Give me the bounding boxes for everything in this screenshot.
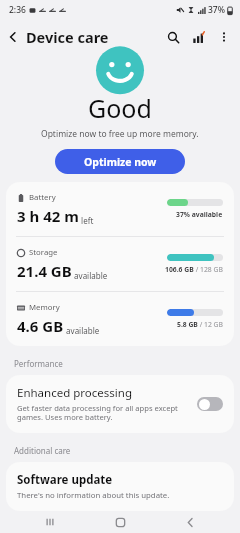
button[interactable]: Usage statistics (186, 24, 212, 50)
staticText: 106.6 GB (165, 265, 194, 274)
staticText: / 128 GB (194, 265, 223, 274)
button[interactable]: Enhanced processing toggle (197, 397, 223, 411)
staticText: Enhanced processing (17, 385, 132, 401)
staticText: Software update (17, 472, 113, 488)
button[interactable]: Enhanced processing (6, 375, 234, 433)
button[interactable]: Back (0, 24, 26, 50)
staticText: 4.6 GB (17, 316, 64, 336)
staticText: Device care (26, 27, 109, 47)
staticText: Optimize now to free up more memory. (41, 128, 199, 140)
button[interactable]: Memory (6, 292, 234, 346)
staticText: Memory (29, 302, 60, 313)
staticText: 37% (208, 4, 225, 16)
staticText: 2:36 (9, 4, 26, 16)
button[interactable]: Storage (6, 237, 234, 291)
staticText: Performance (14, 358, 63, 369)
staticText: Optimize now (84, 155, 157, 169)
button[interactable]: Back (170, 511, 210, 533)
staticText: 37% available (176, 210, 223, 219)
button[interactable]: Software update (6, 462, 234, 511)
staticText: / 12 GB (198, 320, 223, 329)
staticText: Good (88, 91, 152, 125)
staticText: Get faster data processing for all apps … (17, 403, 189, 423)
staticText: available (72, 270, 108, 281)
staticText: There's no information about this update… (17, 490, 170, 501)
staticText: Storage (29, 247, 58, 258)
staticText: 21.4 GB (17, 261, 72, 281)
button[interactable]: Search (160, 24, 186, 50)
button[interactable]: Recent apps (30, 511, 70, 533)
staticText: available (64, 325, 100, 336)
staticText: 5.8 GB (177, 320, 198, 329)
staticText: Additional care (14, 445, 71, 456)
staticText: left (79, 215, 94, 226)
staticText: 3 h 42 m (17, 206, 79, 226)
button[interactable]: Home (100, 511, 140, 533)
button[interactable]: Battery (6, 182, 234, 236)
button[interactable]: Optimize now (55, 149, 185, 174)
button[interactable]: More options (212, 25, 236, 49)
staticText: Battery (29, 192, 56, 203)
